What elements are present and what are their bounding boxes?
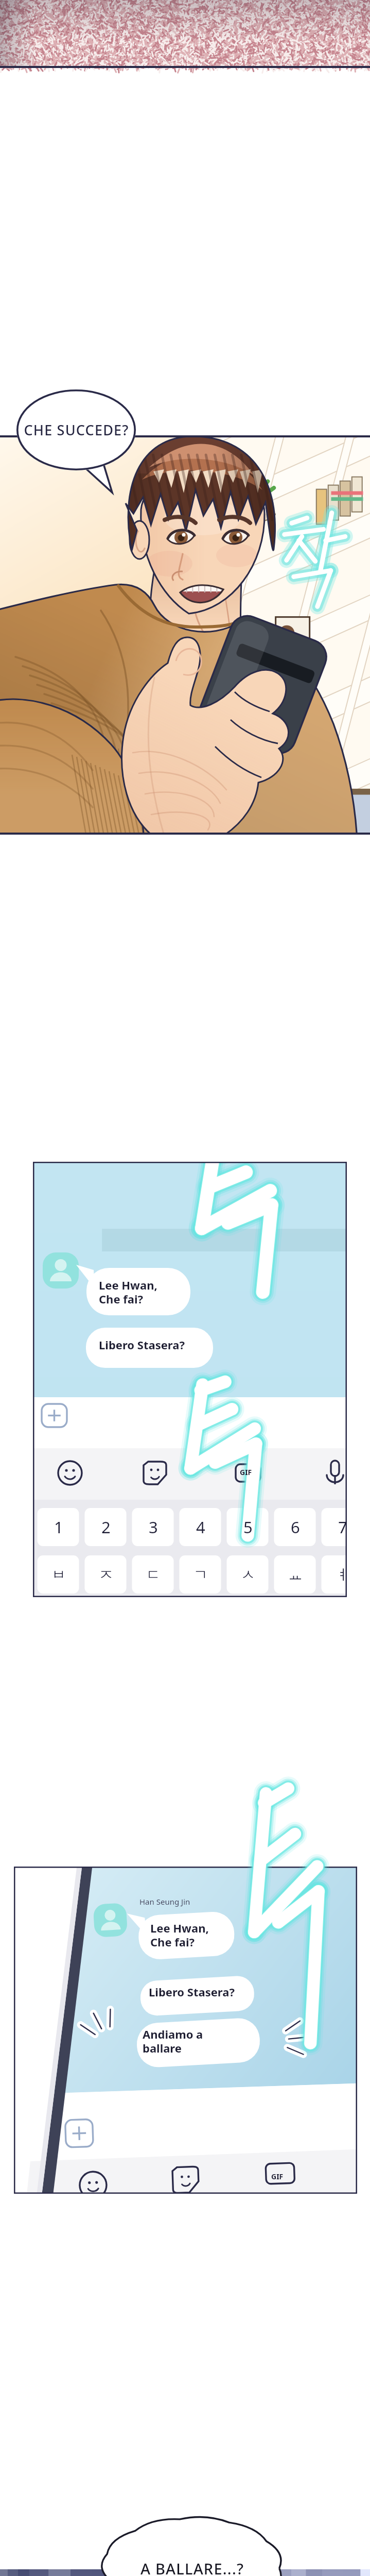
staticText: ㅅ	[241, 1566, 255, 1584]
staticText: 3	[149, 1516, 158, 1538]
staticText: GIF	[271, 2172, 284, 2181]
staticText: 5	[243, 1516, 253, 1538]
staticText: ㅂ	[51, 1566, 66, 1584]
staticText: Lee Hwan, Che fai?	[150, 1920, 209, 1950]
staticText: 7	[338, 1516, 347, 1538]
staticText: CHE SUCCEDE?	[24, 420, 129, 439]
staticText: ㅛ	[288, 1566, 303, 1584]
staticText: Andiamo a ballare	[143, 2026, 203, 2056]
staticText: 6	[291, 1516, 300, 1538]
staticText: A BALLARE...?	[140, 2558, 244, 2576]
staticText: ㅕ	[336, 1566, 350, 1584]
staticText: Libero Stasera?	[99, 1337, 185, 1352]
staticText: GIF	[240, 1467, 252, 1477]
staticText: Lee Hwan, Che fai?	[99, 1277, 157, 1307]
staticText: Libero Stasera?	[149, 1984, 235, 1999]
staticText: 1	[54, 1516, 63, 1538]
staticText: 4	[196, 1516, 205, 1538]
staticText: ㄱ	[193, 1566, 208, 1584]
staticText: Han Seung Jin	[139, 1896, 190, 1907]
staticText: ㄷ	[146, 1566, 161, 1584]
staticText: ㅈ	[99, 1566, 113, 1584]
staticText: 2	[101, 1516, 111, 1538]
